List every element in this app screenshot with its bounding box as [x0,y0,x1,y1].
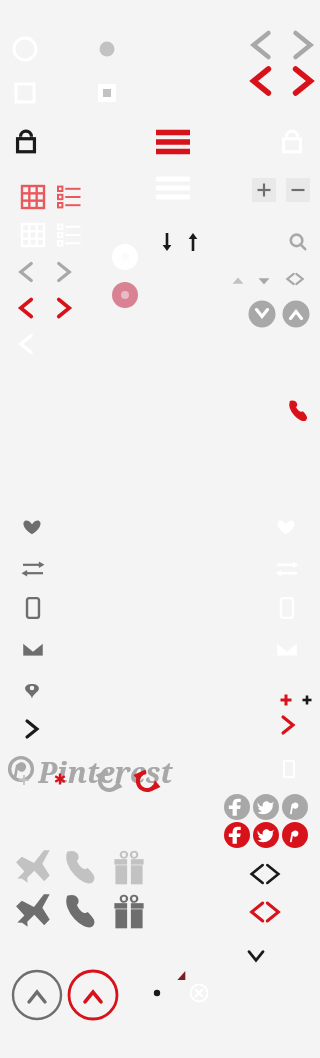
button[interactable]: Corner [172,966,190,984]
button[interactable]: Upload [183,230,203,254]
button[interactable]: Scroll to top [10,968,64,1022]
button[interactable]: Twitter [253,822,279,848]
button[interactable]: Next [20,716,44,742]
button[interactable]: Email [272,636,302,662]
staticText: Pinterest [38,752,173,786]
button[interactable]: Transfer [18,556,48,582]
button[interactable]: Gifts [104,840,154,890]
button[interactable]: Locked [276,122,308,160]
button[interactable]: Refresh [132,766,162,796]
button[interactable]: Menu [154,172,192,204]
button[interactable]: Next [50,294,78,322]
button[interactable]: Mobile [20,594,46,622]
button[interactable]: Pinterest [6,752,181,786]
button[interactable]: Flights [10,844,58,888]
button[interactable]: Facebook [224,794,250,820]
button[interactable]: Grid view [18,220,48,250]
button[interactable]: Favourite [18,514,46,540]
button[interactable]: Add [298,690,316,710]
button[interactable]: Checkbox unselected [12,80,38,106]
button[interactable]: Mobile [274,594,300,622]
button[interactable]: Scroll to top [66,968,120,1022]
button[interactable]: Previous [12,294,40,322]
button[interactable]: Expand [242,944,270,968]
button[interactable]: Zoom in [252,178,276,202]
button[interactable]: Email [18,636,48,662]
button[interactable]: Code [240,896,290,928]
button[interactable]: Zoom out [286,178,310,202]
button[interactable]: Record [110,280,140,310]
button[interactable]: Call [58,844,102,888]
button[interactable]: Menu [154,126,192,158]
button[interactable]: Grid view [18,182,48,212]
button[interactable]: Next [50,258,78,286]
button[interactable]: Previous [246,28,276,62]
button[interactable]: Bullet [150,986,164,1000]
button[interactable]: Location [20,676,44,704]
button[interactable]: Gifts [104,884,154,934]
button[interactable]: Previous [12,258,40,286]
button[interactable]: Next [288,28,318,62]
button[interactable]: Pinterest [282,794,308,820]
button[interactable]: Collapse [248,300,276,328]
button[interactable]: Code [282,268,308,290]
button[interactable]: Expand [282,300,310,328]
button[interactable]: Sort descending [254,272,274,290]
button[interactable]: Close [188,982,210,1004]
button[interactable]: Refresh [94,766,124,796]
button[interactable]: Record [110,242,140,272]
button[interactable]: Search [284,228,312,256]
button[interactable]: Flights [10,888,58,932]
button[interactable]: Favourite [272,514,300,540]
button[interactable]: Previous [246,64,276,98]
button[interactable]: Radio unselected [12,36,38,62]
button[interactable]: Add [276,690,296,710]
button[interactable]: Locked [10,122,42,160]
button[interactable]: Next [276,712,300,738]
button[interactable]: List view [52,182,86,212]
button[interactable]: Sort ascending [228,272,248,290]
button[interactable]: Next [288,64,318,98]
button[interactable]: Transfer [272,556,302,582]
button[interactable]: Call [58,888,102,932]
button[interactable]: List view [52,220,86,250]
button[interactable]: Featured [50,768,70,790]
button[interactable]: Twitter [253,794,279,820]
button[interactable]: Previous [12,330,40,358]
button[interactable]: Code [240,858,290,890]
button[interactable]: Pinterest [282,822,308,848]
button[interactable]: Radio selected [94,36,120,62]
button[interactable]: Facebook [224,822,250,848]
button[interactable]: Download [157,230,177,254]
button[interactable]: Call [284,396,312,424]
button[interactable]: Add [14,770,34,790]
button[interactable]: Mobile [278,756,300,782]
button[interactable]: Checkbox selected [94,80,120,106]
